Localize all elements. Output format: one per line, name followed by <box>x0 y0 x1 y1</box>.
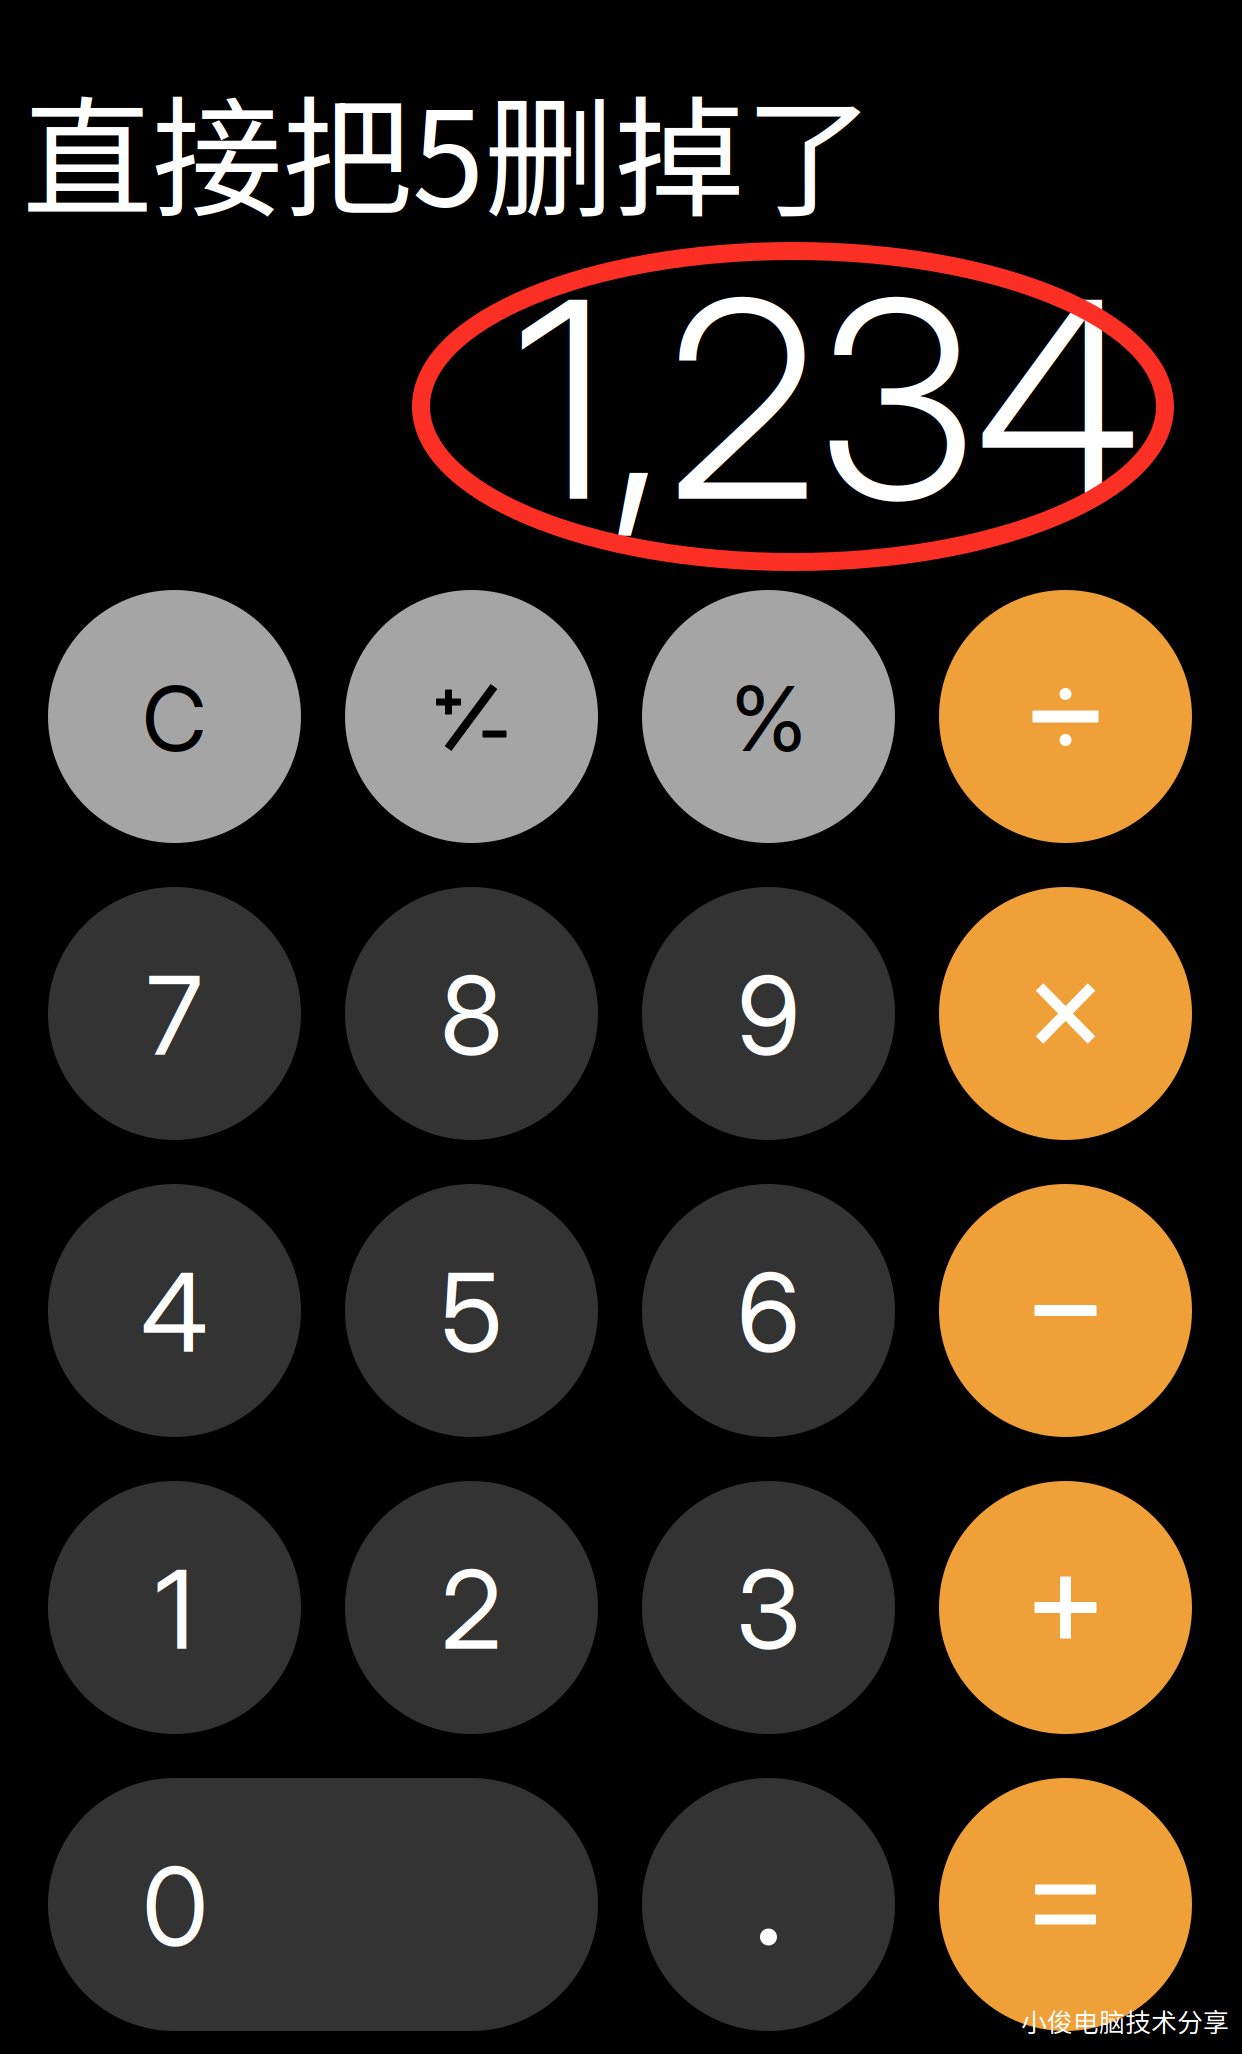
button[interactable]: 6 <box>642 1184 895 1437</box>
staticText: 4 <box>141 1247 208 1378</box>
staticText: 1,234 <box>514 234 1140 565</box>
staticText: 6 <box>737 1247 800 1378</box>
button[interactable]: 8 <box>345 887 598 1140</box>
button[interactable]: Equals <box>939 1778 1192 2031</box>
button[interactable]: Plus <box>939 1481 1192 1734</box>
button[interactable]: 9 <box>642 887 895 1140</box>
staticText: 5 <box>440 1247 502 1378</box>
button[interactable]: 5 <box>345 1184 598 1437</box>
button[interactable]: Minus <box>939 1184 1192 1437</box>
button[interactable]: 7 <box>48 887 301 1140</box>
button[interactable]: Plus minus <box>345 590 598 843</box>
button[interactable]: Divide <box>939 590 1192 843</box>
staticText: 8 <box>440 950 503 1081</box>
button[interactable]: 2 <box>345 1481 598 1734</box>
staticText: 1 <box>155 1544 194 1675</box>
staticText: 直接把5删掉了 <box>22 55 874 244</box>
staticText: C <box>142 664 207 773</box>
staticText: 7 <box>146 950 202 1081</box>
staticText: 2 <box>441 1544 502 1675</box>
button[interactable]: 0 <box>48 1778 598 2031</box>
button[interactable]: Decimal point <box>642 1778 895 2031</box>
staticText: 0 <box>142 1841 208 1972</box>
button[interactable]: 4 <box>48 1184 301 1437</box>
staticText: 9 <box>737 950 800 1081</box>
staticText: 3 <box>736 1544 801 1675</box>
button[interactable]: C <box>48 590 301 843</box>
button[interactable]: 3 <box>642 1481 895 1734</box>
button[interactable]: % <box>642 590 895 843</box>
staticText: 小俊电脑技术分享 <box>1021 2002 1229 2039</box>
button[interactable]: Multiply <box>939 887 1192 1140</box>
button[interactable]: 1 <box>48 1481 301 1734</box>
staticText: % <box>731 664 806 773</box>
